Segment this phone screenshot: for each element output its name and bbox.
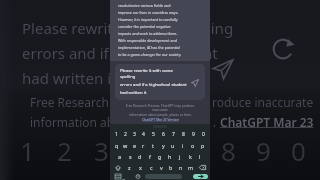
button[interactable]: w — [121, 140, 130, 151]
staticText: information about people, places or fact… — [129, 113, 192, 117]
staticText: 2 — [57, 133, 72, 168]
button[interactable]: l — [195, 151, 205, 162]
staticText: i — [182, 142, 184, 149]
button[interactable]: 1 — [112, 129, 121, 140]
button[interactable]: p — [198, 140, 208, 151]
staticText: c — [150, 164, 153, 171]
button[interactable]: 9 — [188, 129, 198, 140]
button[interactable]: Send message — [189, 77, 200, 88]
staticText: errors and if a highschool student — [120, 82, 187, 88]
button[interactable]: e — [130, 140, 139, 151]
button[interactable]: 2 — [121, 129, 130, 140]
button[interactable]: q — [112, 140, 121, 151]
button[interactable]: r — [139, 140, 148, 151]
button[interactable]: 3 — [130, 129, 139, 140]
button[interactable]: c — [146, 162, 156, 173]
button[interactable]: h — [165, 151, 175, 162]
button[interactable]: Space — [145, 174, 182, 179]
button[interactable]: 5 — [148, 129, 158, 140]
staticText: q — [115, 142, 119, 149]
staticText: 5 — [152, 131, 155, 138]
button[interactable]: f — [145, 151, 155, 162]
staticText: x — [139, 164, 142, 171]
button[interactable]: m — [186, 162, 196, 173]
button[interactable]: b — [166, 162, 176, 173]
staticText: 7 — [172, 131, 175, 138]
button[interactable]: t — [148, 140, 158, 151]
staticText: j — [179, 153, 181, 160]
button[interactable]: o — [188, 140, 198, 151]
staticText: implementation, AI has the potential — [118, 45, 180, 50]
button[interactable]: Please rewrite it with some spelling — [115, 64, 205, 100]
button[interactable]: k — [185, 151, 195, 162]
staticText: w — [123, 142, 128, 149]
staticText: f — [149, 153, 151, 160]
button[interactable]: v — [156, 162, 166, 173]
button[interactable]: Backspace — [196, 162, 208, 173]
button[interactable]: z — [124, 162, 135, 173]
staticText: 0 — [291, 133, 306, 168]
staticText: r — [142, 142, 145, 149]
staticText: 8 — [182, 131, 185, 138]
staticText: to be a game-changer for our society. — [118, 52, 182, 57]
button[interactable]: ChatGPT Mar 23 Version — [142, 118, 179, 122]
button[interactable]: j — [175, 151, 185, 162]
button[interactable]: y — [158, 140, 168, 151]
staticText: Free Research Preview. ChatGPT may produ… — [119, 104, 201, 112]
staticText: consider the potential negative — [118, 24, 171, 29]
staticText: b — [169, 164, 173, 171]
button[interactable]: 4 — [139, 129, 148, 140]
staticText: However, it is important to carefully — [118, 17, 178, 22]
button[interactable]: Send — [212, 58, 234, 80]
staticText: ChatGPT Mar 23 — [220, 114, 314, 130]
button[interactable]: s — [125, 151, 135, 162]
staticText: 2 — [124, 131, 127, 138]
button[interactable]: g — [155, 151, 165, 162]
button[interactable]: i — [178, 140, 188, 151]
staticText: roduce inaccurate — [212, 94, 314, 110]
button[interactable]: u — [168, 140, 178, 151]
staticText: s — [129, 153, 132, 160]
button[interactable]: Shift — [112, 162, 124, 173]
staticText: 0 — [202, 131, 205, 138]
button[interactable]: Enter — [193, 174, 208, 179]
staticText: 6 — [162, 131, 165, 138]
staticText: Please rewrite — [22, 18, 122, 38]
button[interactable]: Regenerate response — [270, 36, 296, 62]
staticText: impacts and work to address them. — [118, 31, 178, 36]
button[interactable]: 8 — [178, 129, 188, 140]
staticText: errors and if a — [22, 43, 122, 63]
staticText: e — [133, 142, 137, 149]
button[interactable]: x — [135, 162, 146, 173]
button[interactable]: a — [115, 151, 125, 162]
staticText: v — [160, 164, 163, 171]
staticText: had written i — [22, 68, 111, 88]
staticText: h — [168, 153, 172, 160]
staticText: nt — [203, 43, 218, 63]
button[interactable]: 6 — [158, 129, 168, 140]
staticText: had written it — [120, 90, 147, 96]
button[interactable]: 0 — [198, 129, 208, 140]
button[interactable]: Emoji — [132, 174, 143, 179]
staticText: d — [138, 153, 142, 160]
staticText: lling — [203, 18, 234, 38]
staticText: information about — [30, 114, 134, 130]
staticText: 4 — [142, 131, 145, 138]
button[interactable]: n — [176, 162, 186, 173]
staticText: m — [188, 164, 194, 171]
staticText: g — [158, 153, 162, 160]
staticText: 3 — [94, 133, 109, 168]
button[interactable]: 7 — [168, 129, 178, 140]
button[interactable]: Symbols — [112, 174, 123, 179]
staticText: 9 — [192, 131, 195, 138]
staticText: u — [171, 142, 175, 149]
button[interactable]: d — [135, 151, 145, 162]
staticText: n — [179, 164, 183, 171]
staticText: k — [189, 153, 192, 160]
staticText: l — [199, 153, 201, 160]
staticText: 1 — [115, 131, 118, 138]
staticText: 9 — [256, 133, 271, 168]
